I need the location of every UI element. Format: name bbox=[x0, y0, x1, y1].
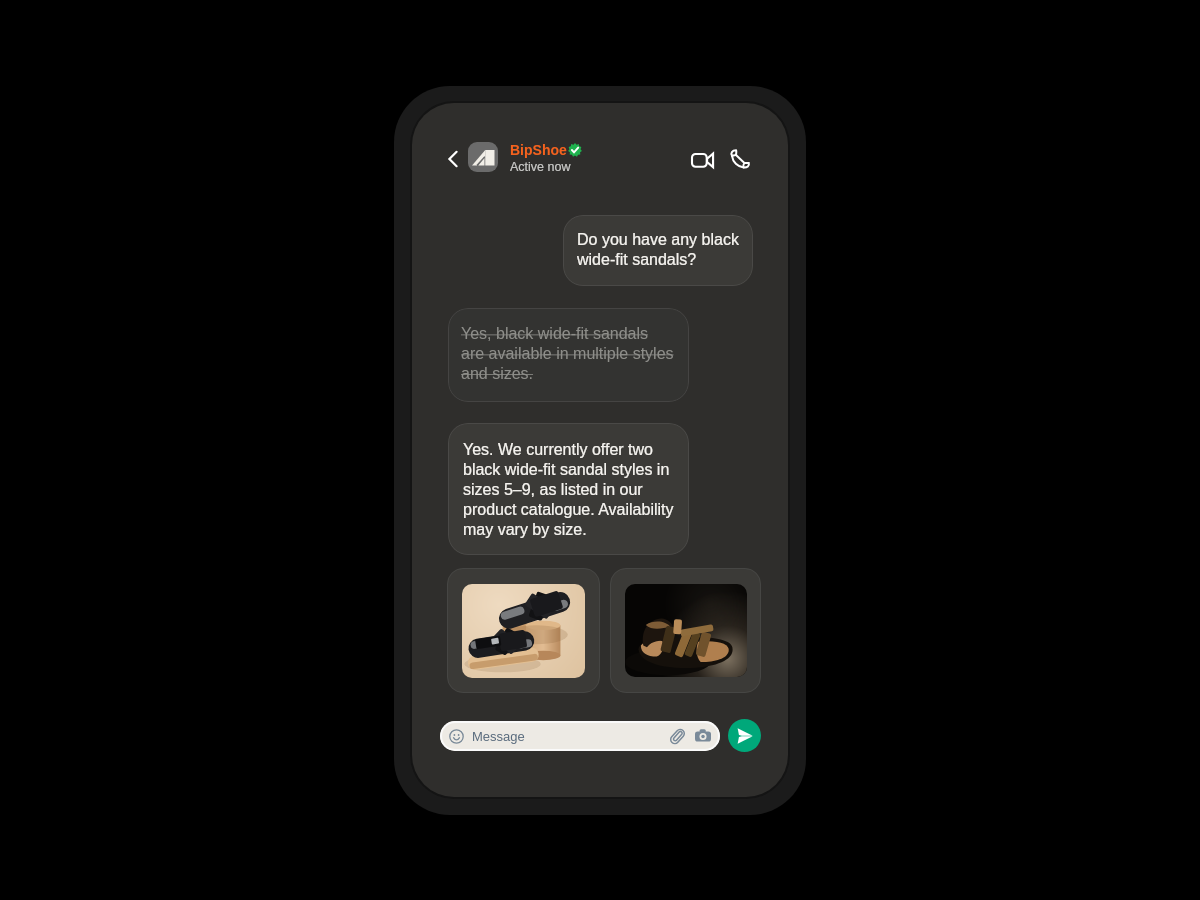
button[interactable]: Black wide-fit slide sandals bbox=[447, 568, 600, 693]
button[interactable]: Send bbox=[728, 719, 761, 752]
button[interactable]: Video call bbox=[687, 145, 717, 175]
button[interactable]: Do you have any black wide-fit sandals? bbox=[563, 215, 753, 286]
staticText: Message bbox=[472, 729, 525, 744]
staticText: Yes, black wide-fit sandals are availabl… bbox=[461, 325, 678, 382]
staticText: Do you have any black wide-fit sandals? bbox=[577, 231, 739, 268]
button[interactable]: BipShoe profile bbox=[468, 142, 498, 172]
staticText: Yes. We currently offer two black wide-f… bbox=[463, 441, 674, 538]
button[interactable]: Bronze strap sandal bbox=[610, 568, 761, 693]
button[interactable]: Call bbox=[725, 144, 755, 174]
button[interactable]: Yes, black wide-fit sandals are availabl… bbox=[448, 308, 689, 402]
staticText: Active now bbox=[510, 160, 571, 174]
button[interactable]: Back bbox=[440, 146, 466, 172]
button[interactable]: Yes. We currently offer two black wide-f… bbox=[448, 423, 689, 555]
button[interactable] bbox=[508, 139, 586, 175]
staticText: BipShoe bbox=[510, 142, 567, 158]
button[interactable]: Message bbox=[440, 721, 720, 751]
